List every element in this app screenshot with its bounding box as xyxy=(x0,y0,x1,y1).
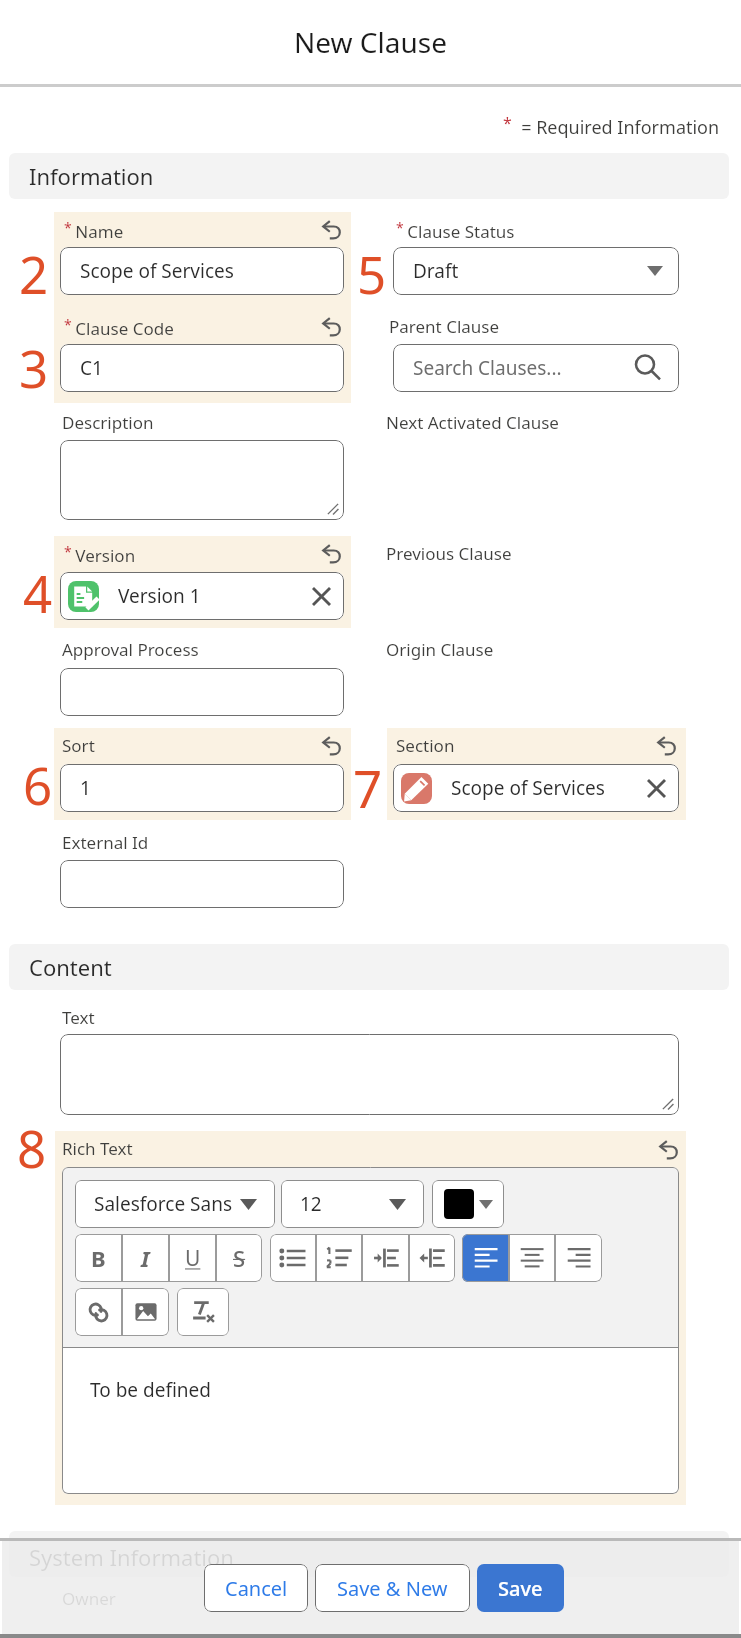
staticText: 8 xyxy=(17,1113,47,1182)
staticText: Scope of Services xyxy=(80,258,234,284)
button[interactable]: 12 xyxy=(281,1180,424,1228)
staticText: Rich Text xyxy=(62,1137,133,1160)
button[interactable]: Undo xyxy=(318,217,344,243)
staticText: System Information xyxy=(29,1542,234,1572)
staticText: U xyxy=(185,1244,201,1273)
staticText: C1 xyxy=(80,355,103,381)
staticText: Salesforce Sans xyxy=(94,1191,233,1217)
button[interactable]: Bold xyxy=(75,1234,122,1282)
button[interactable] xyxy=(60,1034,679,1115)
button[interactable]: Cancel xyxy=(204,1564,308,1612)
button[interactable]: Draft xyxy=(393,247,679,295)
staticText: Previous Clause xyxy=(386,542,512,565)
staticText: Draft xyxy=(413,258,459,284)
staticText: Owner xyxy=(62,1587,116,1610)
button[interactable] xyxy=(60,440,344,520)
button[interactable]: Content xyxy=(9,944,729,990)
button[interactable]: Indent xyxy=(362,1234,409,1282)
button[interactable]: Align left xyxy=(462,1234,509,1282)
staticText: 6 xyxy=(23,750,53,819)
button[interactable]: Salesforce Sans xyxy=(75,1180,275,1228)
staticText: Content xyxy=(29,952,112,982)
button[interactable]: Align right xyxy=(555,1234,602,1282)
staticText: 3 xyxy=(19,333,49,402)
staticText: * Name xyxy=(64,218,124,243)
staticText: Save xyxy=(498,1575,543,1602)
staticText: 5 xyxy=(357,239,387,308)
staticText: Text xyxy=(62,1006,95,1029)
staticText: 12 xyxy=(300,1191,322,1217)
staticText: S xyxy=(233,1243,246,1273)
staticText: 4 xyxy=(23,558,53,627)
staticText: Search Clauses... xyxy=(413,355,562,381)
staticText: * = Required Information xyxy=(503,112,720,139)
button[interactable]: Text color xyxy=(432,1180,504,1228)
button[interactable] xyxy=(60,668,344,716)
button[interactable]: Insert link xyxy=(75,1288,122,1336)
staticText: * Version xyxy=(64,542,136,567)
button[interactable]: Insert image xyxy=(122,1288,169,1336)
button[interactable]: Scope of Services xyxy=(393,764,679,812)
staticText: Sort xyxy=(62,734,95,757)
button[interactable]: Undo xyxy=(318,541,344,567)
staticText: * Clause Code xyxy=(64,315,174,340)
staticText: Origin Clause xyxy=(386,638,494,661)
staticText: Scope of Services xyxy=(451,775,605,801)
staticText: Information xyxy=(29,161,154,191)
button[interactable]: Information xyxy=(9,153,729,199)
button[interactable]: Clear Section xyxy=(648,780,665,797)
button[interactable]: Italic xyxy=(122,1234,169,1282)
button[interactable]: Scope of Services xyxy=(60,247,344,295)
staticText: Version 1 xyxy=(118,583,201,609)
staticText: Approval Process xyxy=(62,638,199,661)
staticText: 7 xyxy=(353,753,383,822)
staticText: To be defined xyxy=(90,1377,211,1403)
staticText: Parent Clause xyxy=(389,315,500,338)
button[interactable] xyxy=(60,860,344,908)
button[interactable]: Clear Version xyxy=(313,588,330,605)
button[interactable]: Version 1 xyxy=(60,572,344,620)
button[interactable]: Strikethrough xyxy=(216,1234,262,1282)
button[interactable]: Search Clauses... xyxy=(393,344,679,392)
staticText: Description xyxy=(62,411,154,434)
button[interactable]: Save xyxy=(477,1564,564,1612)
button[interactable]: Undo xyxy=(318,314,344,340)
button[interactable]: To be defined xyxy=(62,1347,679,1494)
button[interactable]: Undo xyxy=(655,1137,681,1163)
staticText: * Clause Status xyxy=(396,218,515,243)
staticText: Next Activated Clause xyxy=(386,411,559,434)
staticText: External Id xyxy=(62,831,149,854)
button[interactable]: Undo xyxy=(318,733,344,759)
button[interactable]: Save & New xyxy=(315,1564,470,1612)
staticText: I xyxy=(141,1243,150,1273)
button[interactable]: Numbered list xyxy=(316,1234,362,1282)
button[interactable]: Undo xyxy=(653,733,679,759)
other: Search xyxy=(633,353,663,383)
button[interactable]: C1 xyxy=(60,344,344,392)
button[interactable]: Remove formatting xyxy=(177,1288,229,1336)
button[interactable]: Outdent xyxy=(409,1234,455,1282)
button[interactable]: Underline xyxy=(169,1234,216,1282)
staticText: B xyxy=(91,1243,106,1273)
button[interactable]: 1 xyxy=(60,764,344,812)
staticText: 2 xyxy=(19,239,49,308)
button[interactable]: Align center xyxy=(509,1234,555,1282)
staticText: Save & New xyxy=(337,1575,448,1602)
button[interactable]: Bulleted list xyxy=(270,1234,316,1282)
staticText: Section xyxy=(396,734,455,757)
staticText: New Clause xyxy=(294,23,447,61)
staticText: Cancel xyxy=(225,1575,288,1602)
staticText: 1 xyxy=(80,775,91,801)
